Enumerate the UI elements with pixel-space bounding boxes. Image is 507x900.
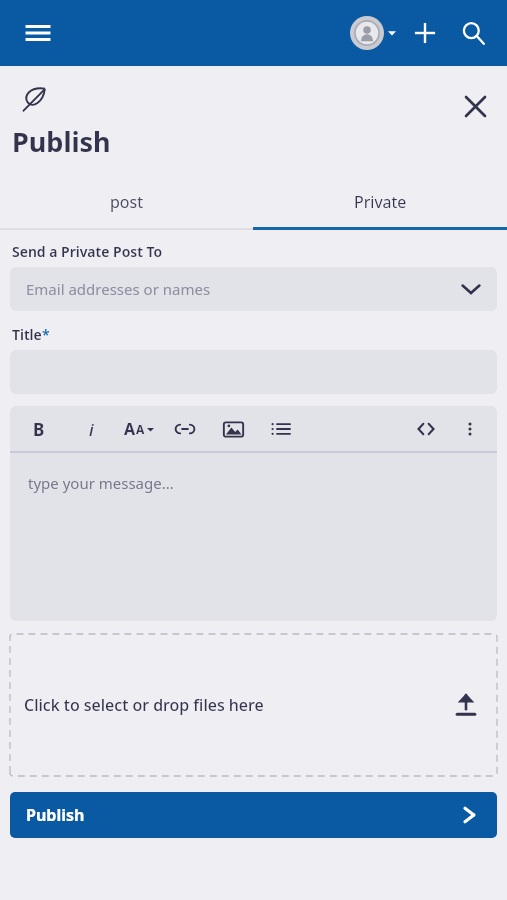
button[interactable]: Link [170,414,200,444]
staticText: A [124,418,136,440]
staticText: Publish [12,123,111,160]
button[interactable]: Private [253,178,507,226]
button[interactable]: post [0,178,253,226]
staticText: Private [354,191,407,213]
button[interactable]: Close [451,82,499,130]
staticText: A [136,421,145,437]
staticText: type your message... [28,473,174,493]
button[interactable]: Bold [24,414,54,444]
button[interactable]: Publish [10,792,497,838]
staticText: Click to select or drop files here [24,694,264,716]
staticText: Title [12,325,42,344]
button[interactable]: More options [455,414,485,444]
button[interactable]: Source code [411,414,441,444]
staticText: * [42,325,50,344]
button[interactable]: Italic [76,414,106,444]
button[interactable]: Email addresses or names [10,267,497,311]
button[interactable]: Bulleted list [266,414,296,444]
button[interactable]: Menu [16,11,60,55]
button[interactable]: Text size [124,414,154,444]
staticText: Email addresses or names [26,279,211,299]
button[interactable]: Click to select or drop files here [10,634,497,776]
button[interactable]: Message [10,453,497,621]
staticText: B [33,418,45,441]
staticText: post [110,191,143,213]
button[interactable]: Insert image [218,414,248,444]
staticText: i [89,418,94,441]
button[interactable]: Account [346,16,401,50]
staticText: Publish [26,804,85,826]
button[interactable]: Add [401,9,449,57]
staticText: Send a Private Post To [12,242,163,261]
button[interactable]: Search [449,9,497,57]
